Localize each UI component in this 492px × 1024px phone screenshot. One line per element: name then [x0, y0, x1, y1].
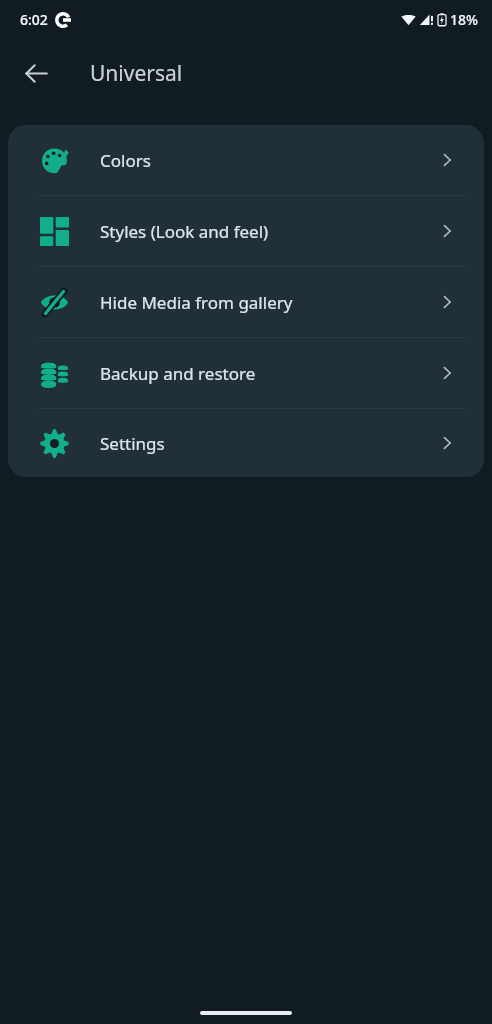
staticText: Backup and restore	[100, 362, 409, 385]
staticText: 6:02	[20, 10, 48, 29]
button[interactable]: Styles (Look and feel)	[8, 196, 484, 266]
staticText: Hide Media from gallery	[100, 291, 409, 314]
staticText: 18%	[450, 10, 478, 29]
button[interactable]: Hide Media from gallery	[8, 267, 484, 337]
button[interactable]: Backup and restore	[8, 338, 484, 408]
staticText: Universal	[90, 59, 183, 88]
button[interactable]: Colors	[8, 125, 484, 195]
staticText: Styles (Look and feel)	[100, 220, 409, 243]
staticText: Settings	[100, 432, 409, 455]
button[interactable]: Settings	[8, 409, 484, 477]
button[interactable]: Back	[14, 51, 58, 95]
staticText: Colors	[100, 149, 409, 172]
